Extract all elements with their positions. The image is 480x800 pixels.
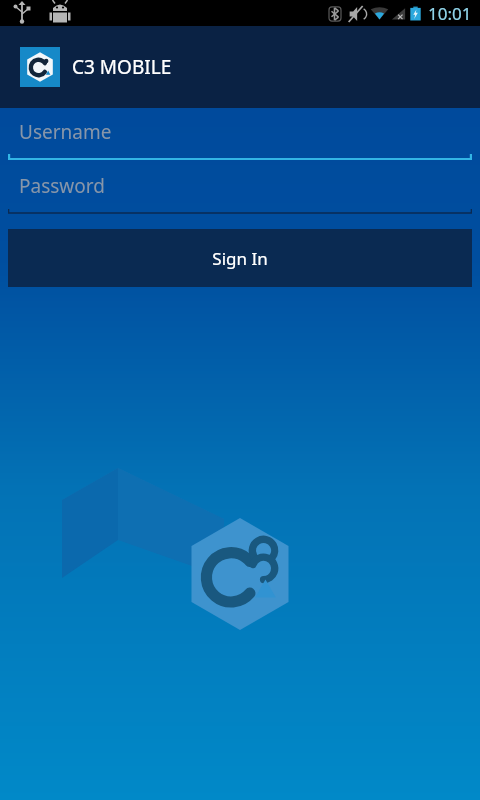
button[interactable]: Username xyxy=(0,108,480,162)
staticText: Password xyxy=(19,173,105,199)
staticText: C3 MOBILE xyxy=(72,54,172,80)
button[interactable]: Sign In xyxy=(8,229,472,287)
staticText: Username xyxy=(19,119,112,145)
button[interactable]: Password xyxy=(0,162,480,216)
staticText: 10:01 xyxy=(428,2,472,25)
staticText: Sign In xyxy=(212,247,268,270)
